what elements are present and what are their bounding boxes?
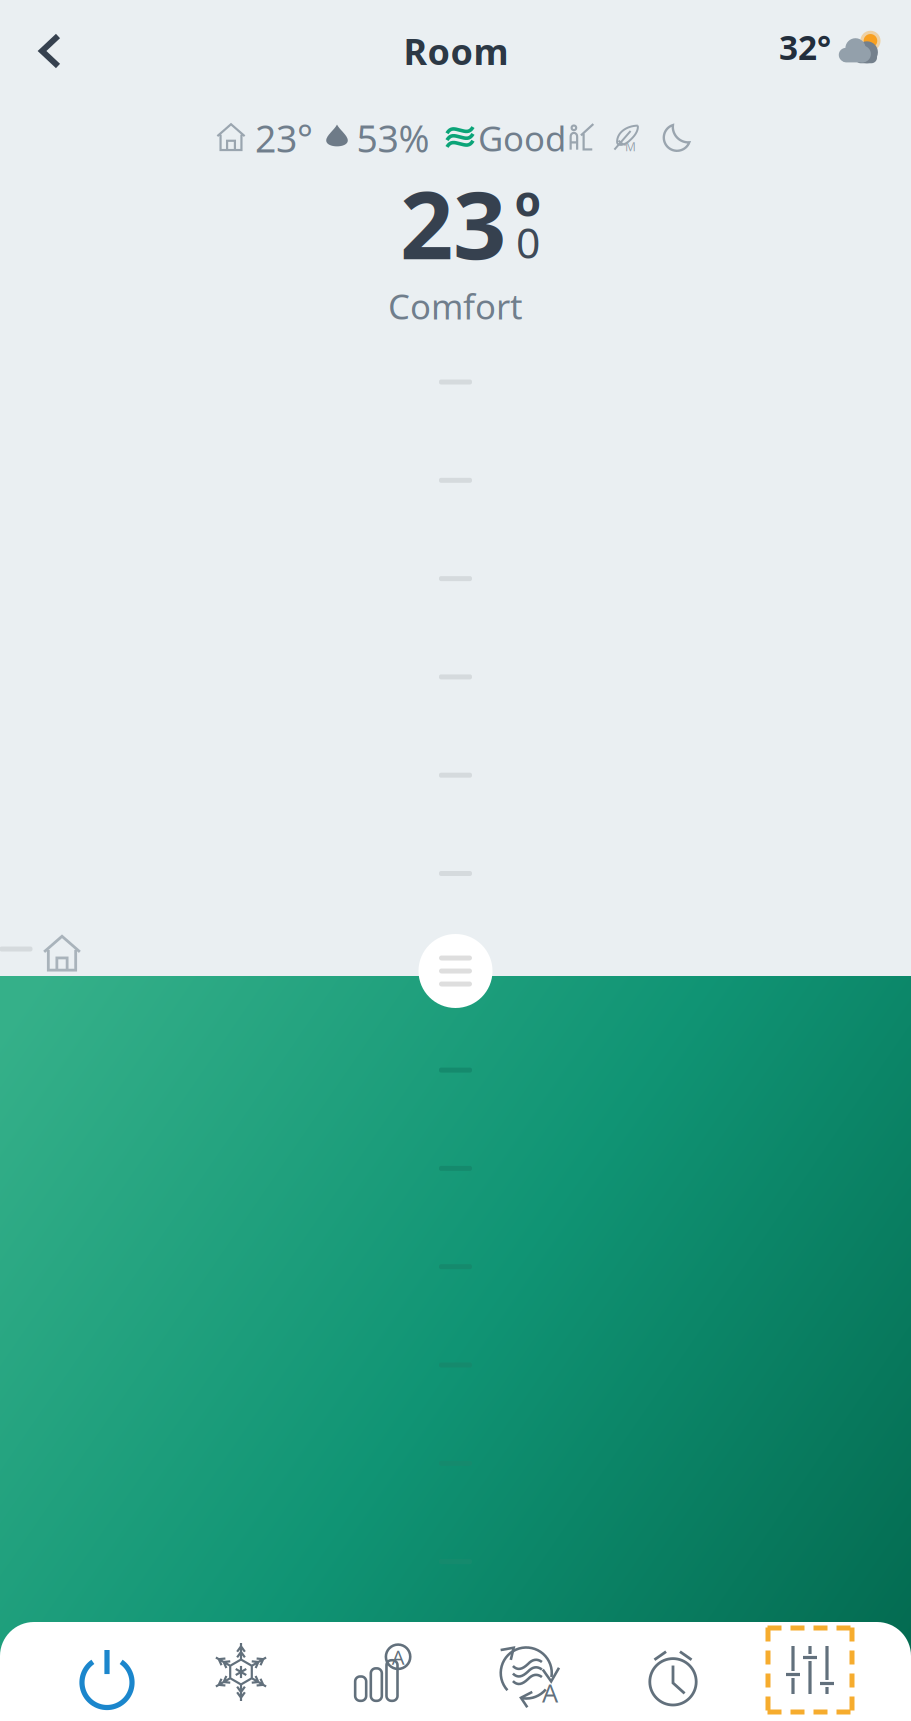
button[interactable]: Power xyxy=(52,1626,162,1721)
staticText: A xyxy=(542,1676,558,1709)
staticText: 53% xyxy=(356,113,429,163)
staticText: A xyxy=(392,1644,405,1670)
staticText: o xyxy=(514,172,541,228)
staticText: 32° xyxy=(779,25,831,69)
button[interactable]: Cool mode xyxy=(186,1622,296,1721)
staticText: 0 xyxy=(516,214,540,270)
staticText: Comfort xyxy=(388,283,523,329)
button[interactable]: Swing xyxy=(473,1623,583,1721)
button[interactable]: Settings xyxy=(755,1620,865,1719)
staticText: 23° xyxy=(255,113,313,163)
staticText: Room xyxy=(403,27,508,75)
button[interactable]: Back xyxy=(14,15,86,87)
staticText: M xyxy=(625,139,636,154)
staticText: 23 xyxy=(400,161,506,285)
staticText: Good xyxy=(478,115,566,161)
button[interactable]: Fan speed xyxy=(328,1623,438,1721)
button[interactable]: Timer xyxy=(618,1626,728,1721)
